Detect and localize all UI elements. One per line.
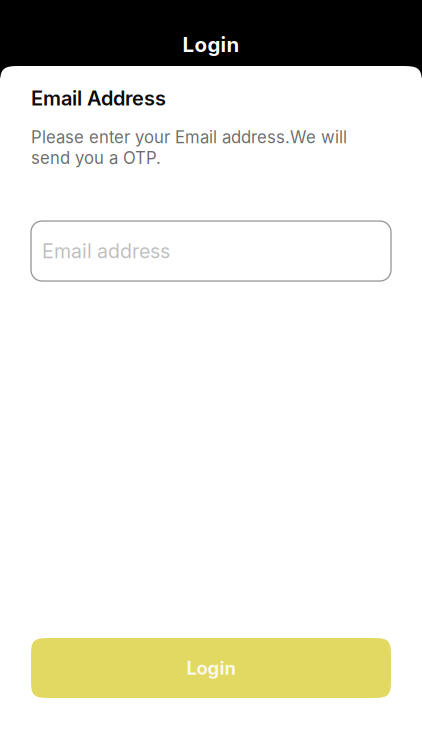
staticText: Login: [186, 657, 235, 679]
button[interactable]: Login: [31, 638, 391, 698]
button[interactable]: Email address: [31, 221, 391, 281]
staticText: Email Address: [31, 86, 166, 110]
staticText: Please enter your Email address.We will: [31, 127, 347, 147]
staticText: Login: [182, 32, 239, 57]
staticText: send you a OTP.: [31, 148, 161, 168]
staticText: Email address: [42, 239, 170, 263]
